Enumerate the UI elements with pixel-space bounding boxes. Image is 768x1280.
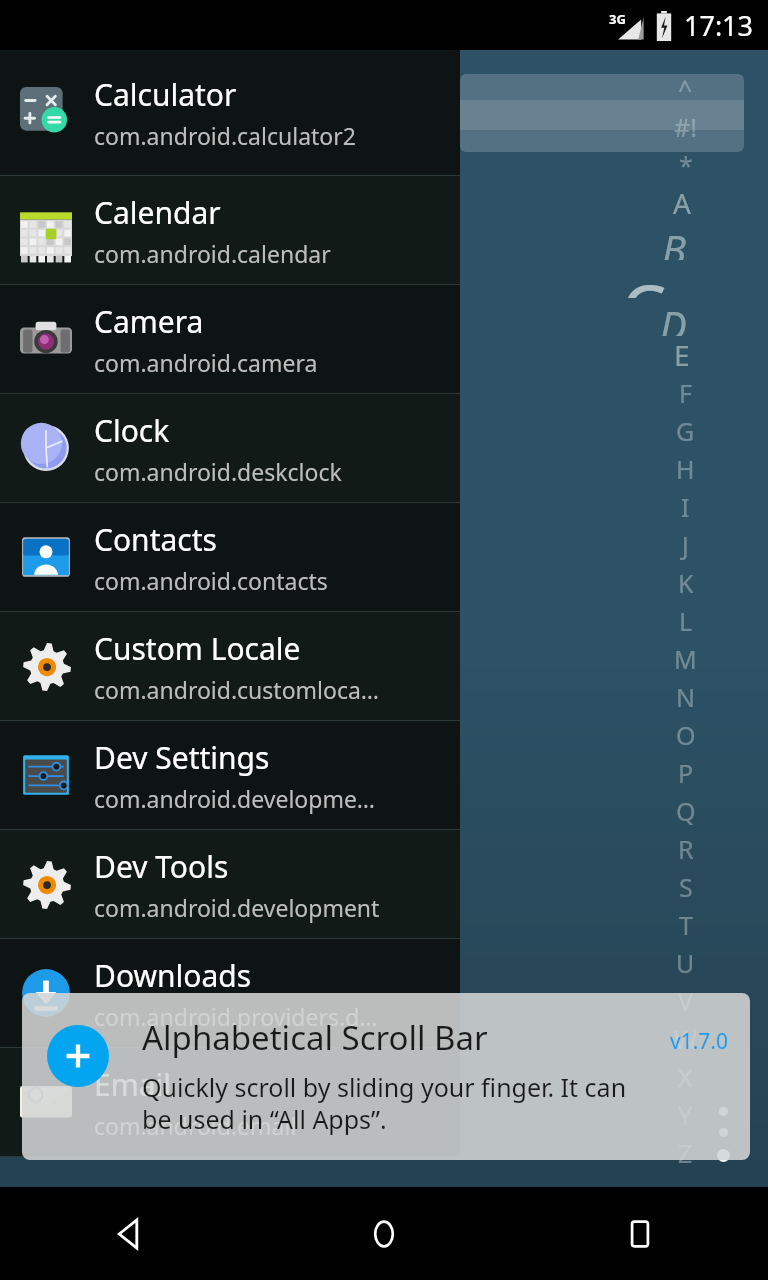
staticText: com.android.contacts bbox=[94, 565, 328, 596]
staticText: v1.7.0 bbox=[670, 1027, 728, 1056]
staticText: com.android.customloca… bbox=[94, 674, 380, 705]
staticText: com.android.camera bbox=[94, 347, 318, 378]
staticText: Calendar bbox=[94, 192, 221, 233]
staticText: Clock bbox=[94, 410, 170, 451]
staticText: X bbox=[678, 1060, 693, 1094]
staticText: com.android.deskclock bbox=[94, 456, 342, 487]
button[interactable]: Home bbox=[256, 1187, 512, 1280]
button[interactable]: Camera bbox=[0, 285, 460, 394]
staticText: P bbox=[678, 756, 694, 790]
staticText: com.android.calculator2 bbox=[94, 120, 356, 151]
staticText: com.android.providers.d… bbox=[94, 1001, 378, 1032]
staticText: Contacts bbox=[94, 519, 217, 560]
staticText: Dev Tools bbox=[94, 846, 229, 887]
staticText: J bbox=[682, 528, 689, 562]
button[interactable]: Add bbox=[47, 1025, 109, 1087]
staticText: E bbox=[674, 336, 690, 374]
button[interactable]: Custom Locale bbox=[0, 612, 460, 721]
staticText: com.android.email bbox=[94, 1110, 297, 1141]
staticText: ^ bbox=[678, 72, 693, 106]
staticText: L bbox=[679, 604, 693, 638]
staticText: Downloads bbox=[94, 955, 252, 996]
button[interactable]: Alphabetical scroll bar bbox=[608, 70, 763, 1180]
staticText: G bbox=[676, 414, 695, 448]
staticText: U bbox=[676, 946, 695, 980]
staticText: Alphabetical Scroll Bar bbox=[142, 1015, 488, 1060]
staticText: O bbox=[676, 718, 696, 752]
staticText: D bbox=[660, 298, 687, 336]
staticText: com.android.developme… bbox=[94, 783, 376, 814]
staticText: C bbox=[621, 260, 667, 298]
button[interactable]: Dev Tools bbox=[0, 830, 460, 939]
staticText: Calculator bbox=[94, 74, 237, 115]
button[interactable]: Back bbox=[0, 1187, 256, 1280]
button[interactable]: Clock bbox=[0, 394, 460, 503]
staticText: com.android.calendar bbox=[94, 238, 331, 269]
staticText: A bbox=[673, 184, 691, 222]
staticText: B bbox=[662, 222, 686, 260]
staticText: Quickly scroll by sliding your finger. I… bbox=[142, 1070, 630, 1136]
button[interactable]: Calculator bbox=[0, 50, 460, 176]
staticText: M bbox=[674, 642, 697, 676]
button[interactable]: Recent apps bbox=[512, 1187, 768, 1280]
button[interactable]: Contacts bbox=[0, 503, 460, 612]
staticText: K bbox=[678, 566, 694, 600]
staticText: Camera bbox=[94, 301, 204, 342]
staticText: I bbox=[681, 490, 690, 524]
button[interactable]: Calendar bbox=[0, 176, 460, 285]
button[interactable]: Downloads bbox=[0, 939, 460, 1048]
staticText: com.android.development bbox=[94, 892, 380, 923]
staticText: 3G bbox=[609, 10, 626, 28]
staticText: Q bbox=[676, 794, 696, 828]
staticText: H bbox=[676, 452, 695, 486]
button[interactable]: Email bbox=[0, 1048, 460, 1157]
staticText: #! bbox=[674, 110, 697, 144]
staticText: Z bbox=[678, 1136, 693, 1170]
staticText: W bbox=[674, 1022, 698, 1056]
staticText: T bbox=[679, 908, 693, 942]
staticText: * bbox=[679, 148, 693, 182]
staticText: Email bbox=[94, 1064, 172, 1105]
staticText: V bbox=[678, 984, 694, 1018]
staticText: S bbox=[679, 870, 693, 904]
button[interactable]: Dev Settings bbox=[0, 721, 460, 830]
staticText: R bbox=[678, 832, 694, 866]
button[interactable]: v1.7.0 bbox=[22, 993, 750, 1160]
staticText: 17:13 bbox=[684, 7, 754, 44]
staticText: Dev Settings bbox=[94, 737, 270, 778]
staticText: Custom Locale bbox=[94, 628, 301, 669]
staticText: N bbox=[676, 680, 696, 714]
staticText: F bbox=[679, 376, 692, 410]
